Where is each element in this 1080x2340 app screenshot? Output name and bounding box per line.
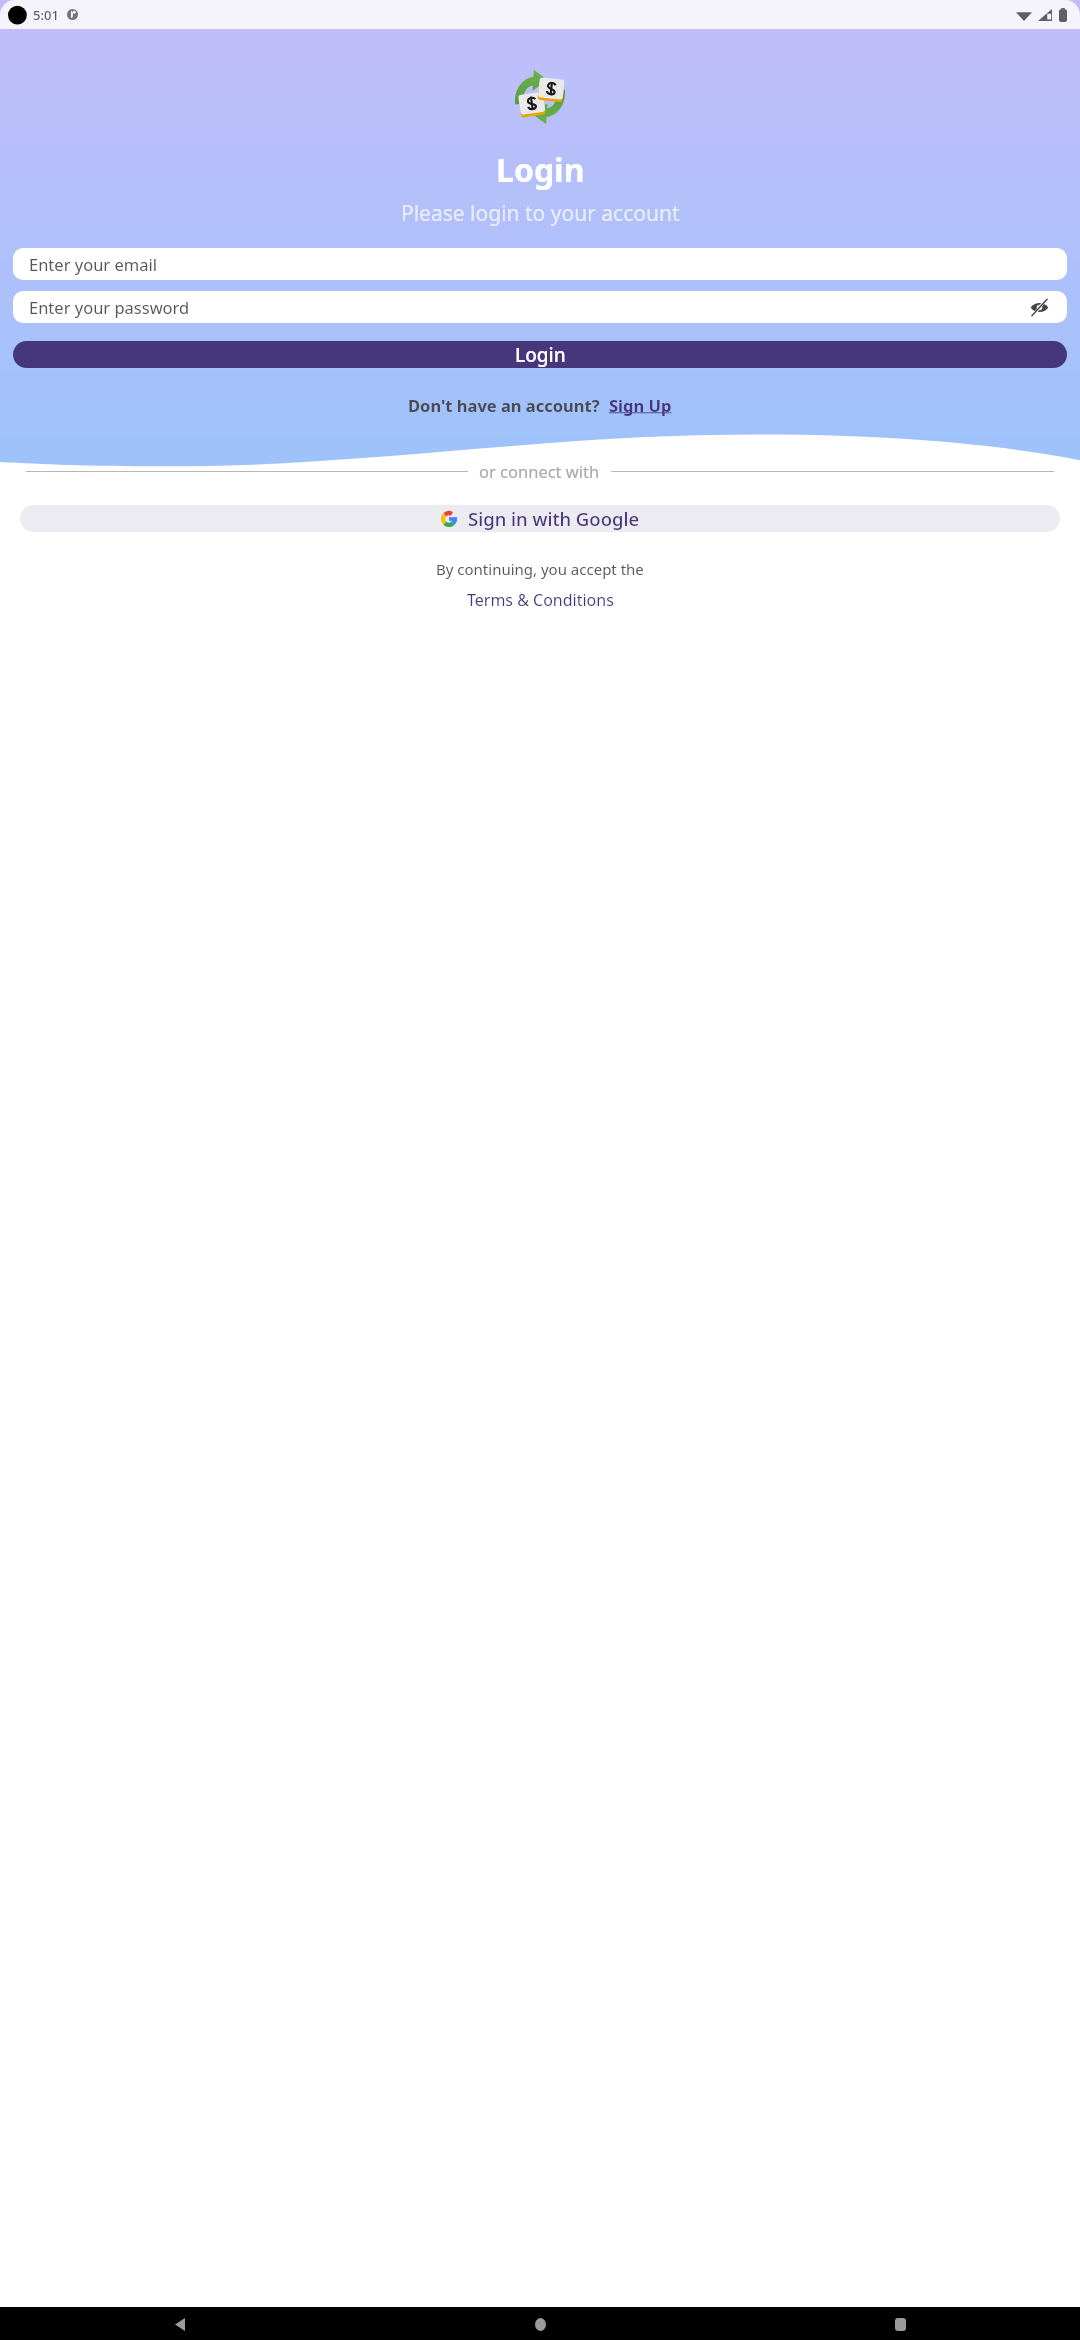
staticText: 5:01 [33,6,59,24]
staticText: Enter your email [29,253,157,275]
button[interactable]: Enter your email [13,248,1067,280]
staticText: Sign in with Google [468,506,640,531]
button[interactable]: Sign Up [609,394,672,416]
button[interactable]: Show password [1027,295,1051,319]
staticText: Sign Up [609,394,672,416]
button[interactable]: Recents [886,2310,914,2338]
button[interactable]: Home [526,2310,554,2338]
staticText: By continuing, you accept the [436,559,644,579]
staticText: Enter your password [29,296,190,318]
staticText: Terms & Conditions [467,589,614,611]
button[interactable]: Enter your password [13,291,1067,323]
button[interactable]: Login [13,341,1067,368]
staticText: Login [515,342,566,368]
button[interactable]: Back [166,2310,194,2338]
staticText: Login [496,148,585,192]
button[interactable]: Terms & Conditions [467,589,614,611]
button[interactable]: Sign in with Google [20,505,1060,532]
staticText: or connect with [479,460,600,482]
staticText: Please login to your account [401,199,680,228]
staticText: Don't have an account? [408,394,600,416]
